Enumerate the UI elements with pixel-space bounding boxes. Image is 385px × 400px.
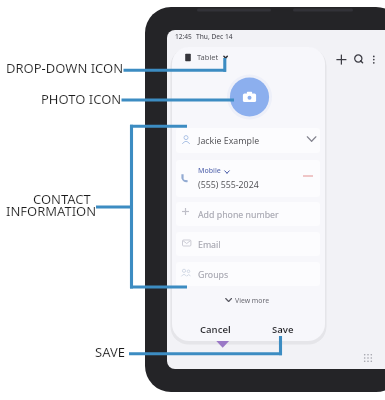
button[interactable]: Search — [350, 51, 368, 69]
button[interactable]: More options — [366, 51, 383, 69]
button[interactable]: Add photo — [238, 80, 273, 115]
button[interactable] — [177, 200, 319, 224]
button[interactable] — [177, 260, 319, 284]
staticText: Add phone number — [198, 209, 279, 221]
staticText: CONTACT — [33, 190, 91, 208]
button[interactable] — [186, 316, 242, 335]
staticText: SAVE — [95, 343, 125, 361]
staticText: Tablet — [197, 52, 219, 62]
staticText: View more — [235, 296, 270, 305]
staticText: Jackie Example — [198, 135, 260, 147]
staticText: Groups — [198, 269, 229, 281]
staticText: Save — [272, 323, 294, 336]
staticText: Thu, Dec 14 — [196, 32, 233, 41]
button[interactable] — [215, 294, 281, 310]
staticText: INFORMATION — [6, 202, 97, 220]
button[interactable] — [254, 316, 310, 335]
staticText: Email — [198, 239, 221, 251]
staticText: Cancel — [200, 323, 231, 336]
staticText: 12:45 — [175, 32, 192, 41]
button[interactable] — [177, 230, 319, 254]
staticText: (555) 555-2024 — [198, 179, 259, 191]
button[interactable] — [177, 127, 319, 151]
button[interactable]: Add contact — [334, 51, 352, 69]
staticText: PHOTO ICON — [41, 90, 122, 108]
staticText: Mobile — [198, 166, 221, 176]
button[interactable]: Account Tablet, drop-down — [180, 49, 234, 66]
button[interactable] — [177, 157, 319, 194]
staticText: DROP-DOWN ICON — [6, 59, 124, 77]
